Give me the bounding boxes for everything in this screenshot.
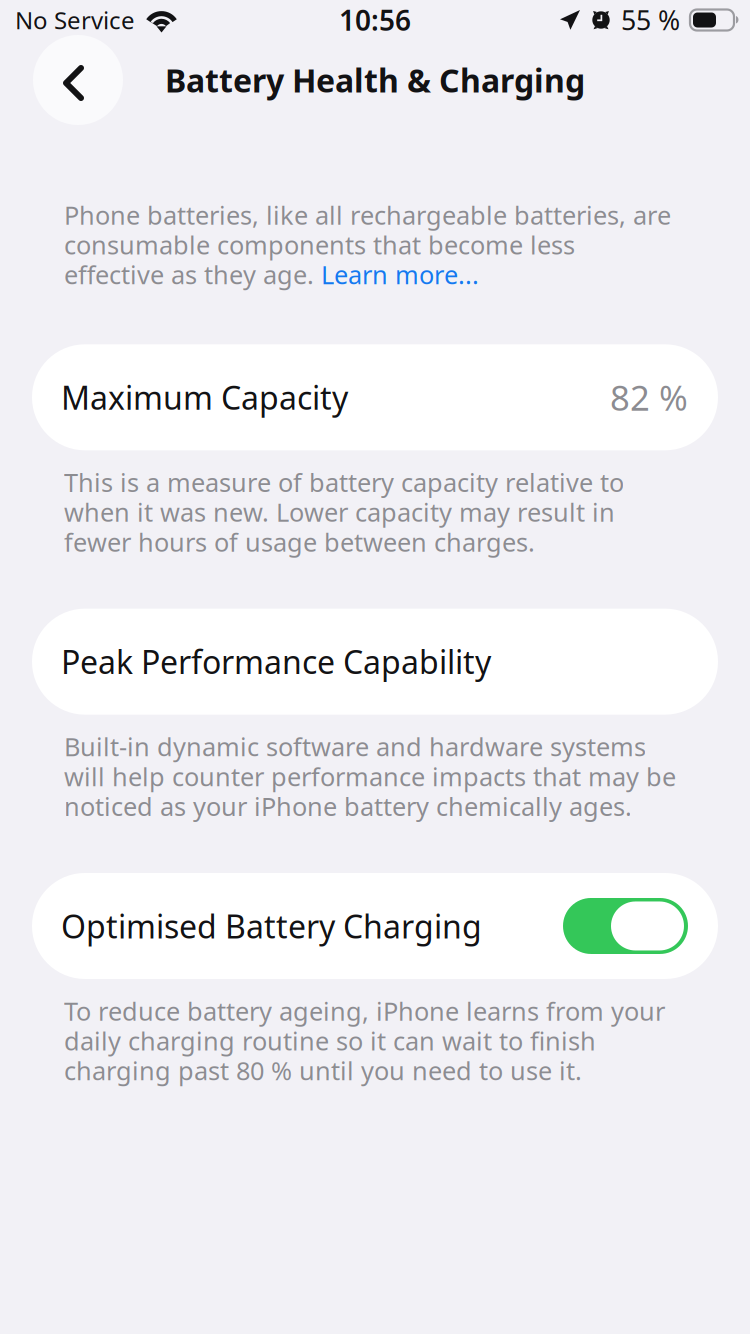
staticText: To reduce battery ageing, iPhone learns … xyxy=(64,994,665,1087)
staticText: Phone batteries, like all rechargeable b… xyxy=(64,198,671,291)
staticText: Maximum Capacity xyxy=(61,376,348,419)
button[interactable]: Peak Performance Capability xyxy=(0,609,750,715)
staticText: No Service xyxy=(15,4,135,36)
staticText: Built-in dynamic software and hardware s… xyxy=(64,730,676,823)
staticText: 55 % xyxy=(621,2,680,38)
staticText: 82 % xyxy=(610,374,688,420)
staticText: This is a measure of battery capacity re… xyxy=(64,465,624,559)
button[interactable]: Back xyxy=(33,35,123,125)
staticText: Optimised Battery Charging xyxy=(61,905,482,947)
button[interactable]: Optimised Battery Charging xyxy=(0,873,750,979)
button[interactable]: Maximum Capacity xyxy=(0,344,750,450)
staticText: 10:56 xyxy=(339,1,411,39)
staticText: Battery Health & Charging xyxy=(165,59,585,101)
staticText: Peak Performance Capability xyxy=(61,640,491,683)
